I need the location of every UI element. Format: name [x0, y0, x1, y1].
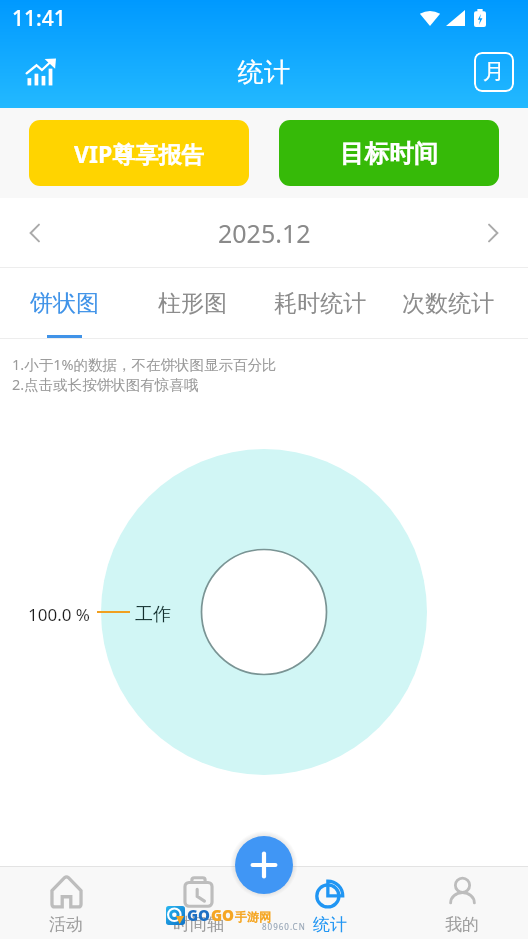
button[interactable]: 月 — [474, 52, 514, 92]
staticText: 饼状图 — [30, 289, 99, 318]
button[interactable]: 次数统计 — [384, 268, 512, 339]
staticText: 2.点击或长按饼状图有惊喜哦 — [12, 374, 199, 394]
staticText: 时间轴 — [173, 914, 224, 935]
button[interactable]: 耗时统计 — [256, 268, 384, 339]
staticText: 11:41 — [12, 4, 66, 33]
button[interactable]: 柱形图 — [128, 268, 256, 339]
button[interactable]: 目标时间 — [279, 120, 499, 186]
staticText: 耗时统计 — [274, 289, 366, 318]
button[interactable]: VIP尊享报告 — [29, 120, 249, 186]
staticText: 2025.12 — [218, 216, 311, 250]
button[interactable]: Report — [19, 50, 63, 94]
staticText: 80960.CN — [262, 921, 306, 932]
staticText: 工作 — [135, 603, 171, 626]
staticText: 100.0 % — [28, 603, 90, 626]
staticText: 柱形图 — [158, 289, 227, 318]
staticText: 次数统计 — [402, 289, 494, 318]
button[interactable]: 活动 — [0, 866, 132, 939]
button[interactable]: 我的 — [396, 866, 528, 939]
staticText: 活动 — [49, 914, 83, 935]
staticText: GO — [211, 905, 235, 925]
button[interactable]: Previous month — [0, 198, 70, 268]
staticText: 1.小于1%的数据，不在饼状图显示百分比 — [12, 354, 277, 374]
staticText: VIP尊享报告 — [74, 138, 205, 169]
staticText: 统计 — [238, 56, 290, 89]
staticText: 目标时间 — [340, 138, 438, 169]
button[interactable]: 饼状图 — [0, 268, 128, 339]
staticText: 统计 — [313, 914, 347, 935]
button[interactable]: 统计 — [264, 866, 396, 939]
staticText: 手游网 — [235, 909, 271, 924]
button[interactable]: 时间轴 — [132, 866, 264, 939]
staticText: 月 — [483, 58, 505, 86]
staticText: GO — [187, 905, 211, 925]
staticText: 我的 — [445, 914, 479, 935]
button[interactable]: Add — [235, 836, 293, 894]
button[interactable]: Next month — [458, 198, 528, 268]
